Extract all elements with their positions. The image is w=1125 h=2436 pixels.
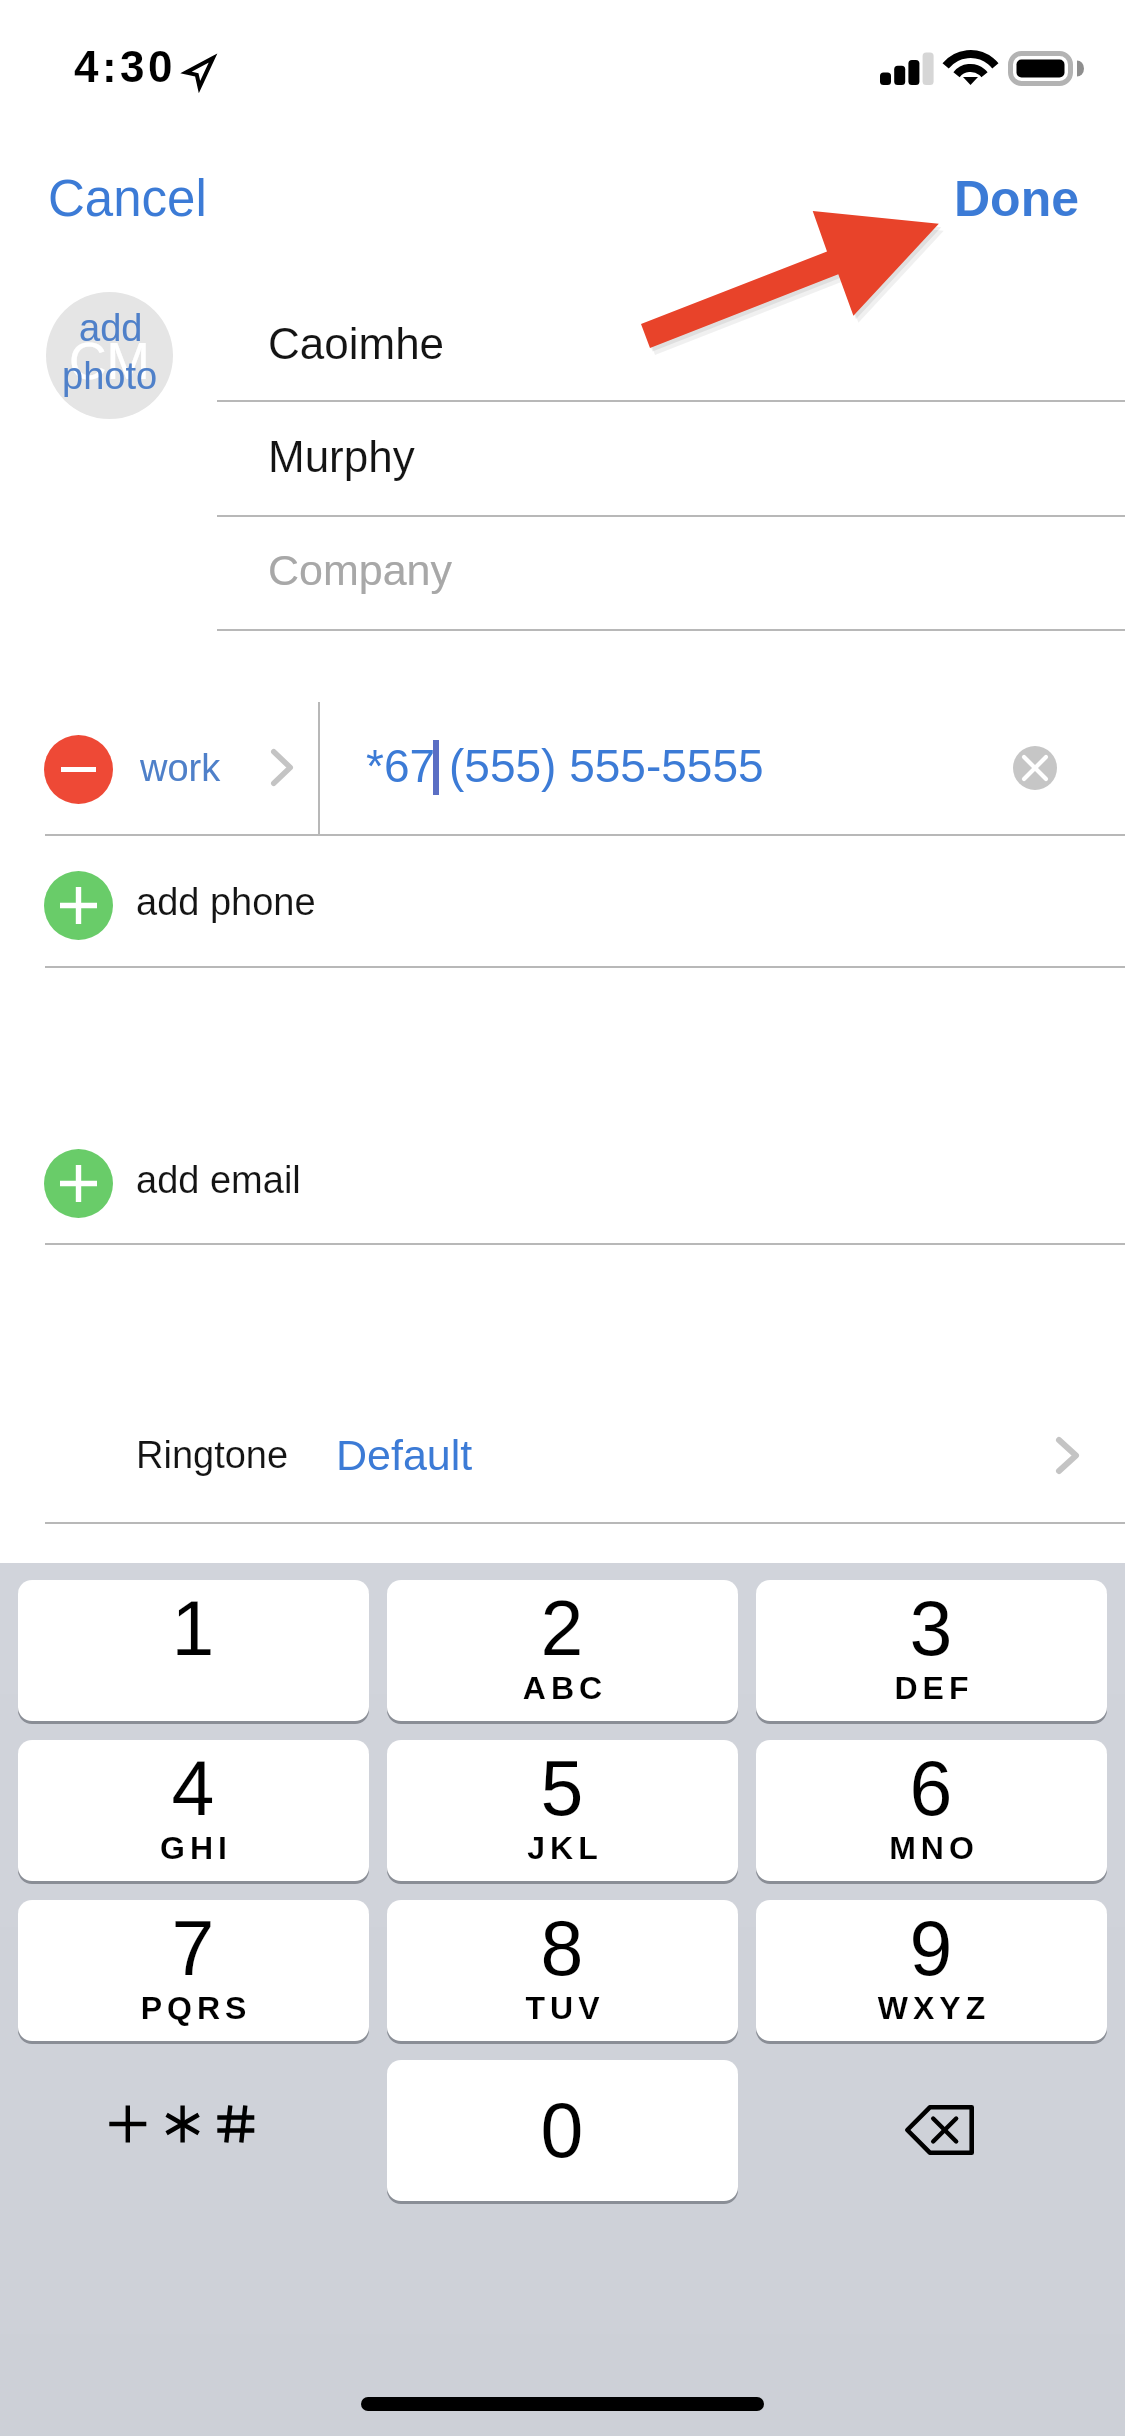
button[interactable]: Plus star hash bbox=[18, 2060, 369, 2201]
staticText: 4 bbox=[73, 1745, 313, 1831]
staticText: DEF bbox=[794, 1670, 1074, 1706]
staticText: Murphy bbox=[268, 432, 415, 481]
staticText: Cancel bbox=[48, 170, 207, 227]
button[interactable] bbox=[18, 1740, 369, 1881]
staticText: 7 bbox=[73, 1905, 313, 1991]
staticText: TUV bbox=[425, 1990, 705, 2026]
button[interactable]: add email bbox=[40, 1131, 440, 1235]
staticText: Done bbox=[954, 171, 1079, 227]
button[interactable]: work phone label bbox=[130, 720, 310, 820]
button[interactable]: Remove work phone bbox=[44, 735, 113, 804]
staticText: work bbox=[140, 747, 221, 789]
staticText: PQRS bbox=[56, 1990, 336, 2026]
staticText: WXYZ bbox=[794, 1990, 1074, 2026]
button[interactable] bbox=[18, 1900, 369, 2041]
button[interactable] bbox=[756, 1580, 1107, 1721]
button[interactable]: Cancel bbox=[22, 160, 232, 260]
staticText: 8 bbox=[442, 1905, 682, 1991]
staticText: MNO bbox=[794, 1830, 1074, 1866]
staticText: ABC bbox=[425, 1670, 705, 1706]
button[interactable] bbox=[387, 1580, 738, 1721]
button[interactable] bbox=[387, 2060, 738, 2201]
staticText: Default bbox=[336, 1431, 473, 1479]
staticText: 2 bbox=[442, 1585, 682, 1671]
staticText: 9 bbox=[811, 1905, 1051, 1991]
staticText: 4:30 bbox=[74, 42, 177, 91]
staticText: 1 bbox=[73, 1585, 313, 1671]
staticText: Ringtone bbox=[136, 1434, 289, 1476]
button[interactable] bbox=[18, 1580, 369, 1721]
staticText: add phone bbox=[136, 881, 316, 923]
button[interactable] bbox=[387, 1900, 738, 2041]
staticText: add email bbox=[136, 1159, 301, 1201]
staticText: 5 bbox=[442, 1745, 682, 1831]
button[interactable]: CM bbox=[46, 292, 173, 419]
button[interactable]: Done bbox=[930, 160, 1100, 260]
staticText: Company bbox=[268, 546, 453, 594]
staticText: (555) 555-5555 bbox=[449, 740, 764, 791]
staticText: JKL bbox=[425, 1830, 705, 1866]
staticText: *67 bbox=[366, 740, 436, 791]
staticText: photo bbox=[62, 355, 158, 397]
button[interactable] bbox=[756, 1900, 1107, 2041]
button[interactable]: Delete bbox=[756, 2060, 1107, 2201]
staticText: 6 bbox=[811, 1745, 1051, 1831]
staticText: GHI bbox=[56, 1830, 336, 1866]
staticText: 3 bbox=[811, 1585, 1051, 1671]
staticText: 0 bbox=[442, 2087, 682, 2173]
staticText: Caoimhe bbox=[268, 319, 445, 368]
button[interactable] bbox=[387, 1740, 738, 1881]
button[interactable]: Clear text bbox=[1013, 746, 1057, 790]
staticText: add bbox=[79, 307, 143, 349]
button[interactable]: add phone bbox=[40, 853, 440, 957]
button[interactable] bbox=[756, 1740, 1107, 1881]
staticText: CM bbox=[69, 332, 150, 390]
button[interactable]: Ringtone bbox=[0, 1405, 1125, 1522]
